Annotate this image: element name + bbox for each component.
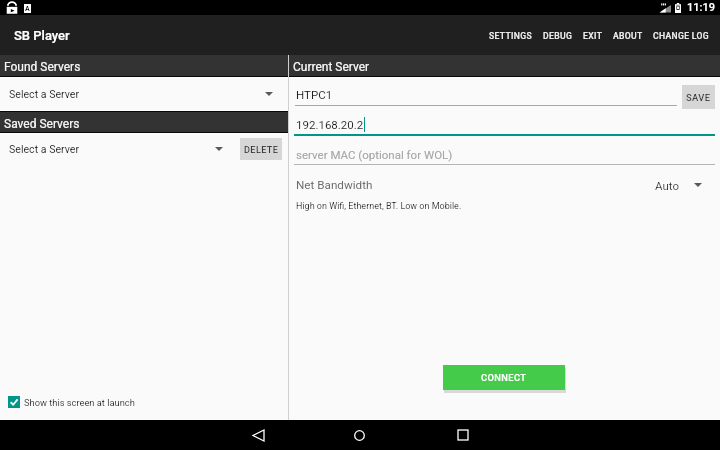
button[interactable]: Select a Server xyxy=(0,78,288,110)
staticText: DEBUG xyxy=(543,31,573,41)
staticText: Current Server xyxy=(293,60,370,74)
button[interactable]: Net Bandwidth xyxy=(289,175,720,195)
button[interactable]: CHANGE LOG xyxy=(648,20,715,50)
staticText: CONNECT xyxy=(481,372,527,383)
button[interactable]: Back xyxy=(243,420,273,450)
button[interactable]: Recent apps xyxy=(448,420,478,450)
button[interactable]: Show this screen at launch xyxy=(0,396,288,420)
staticText: Show this screen at launch xyxy=(24,397,135,408)
button[interactable]: ABOUT xyxy=(608,20,648,50)
button[interactable]: EXIT xyxy=(578,20,608,50)
staticText: HTPC1 xyxy=(296,88,333,101)
staticText: SB Player xyxy=(14,28,70,43)
button[interactable]: DEBUG xyxy=(538,20,578,50)
button[interactable]: Select a Server xyxy=(0,134,240,164)
staticText: Saved Servers xyxy=(4,117,80,131)
staticText: Select a Server xyxy=(9,143,79,155)
button[interactable]: SETTINGS xyxy=(484,20,538,50)
staticText: Net Bandwidth xyxy=(296,178,373,192)
staticText: ABOUT xyxy=(613,31,643,41)
staticText: Select a Server xyxy=(9,88,79,100)
staticText: DELETE xyxy=(244,144,279,155)
button[interactable]: DELETE xyxy=(240,138,282,160)
staticText: Auto xyxy=(655,179,679,192)
staticText: 11:19 xyxy=(687,1,715,14)
staticText: EXIT xyxy=(583,31,603,41)
button[interactable]: Home xyxy=(344,420,374,450)
button[interactable]: SAVE xyxy=(682,85,715,109)
staticText: server MAC (optional for WOL) xyxy=(296,148,453,161)
staticText: SAVE xyxy=(686,92,711,103)
staticText: Found Servers xyxy=(4,60,81,74)
staticText: 192.168.20.2 xyxy=(296,118,364,131)
staticText: CHANGE LOG xyxy=(653,31,710,41)
staticText: A xyxy=(25,5,30,13)
button[interactable]: CONNECT xyxy=(443,365,565,390)
staticText: High on Wifi, Ethernet, BT. Low on Mobil… xyxy=(296,201,462,212)
staticText: SETTINGS xyxy=(489,31,533,41)
